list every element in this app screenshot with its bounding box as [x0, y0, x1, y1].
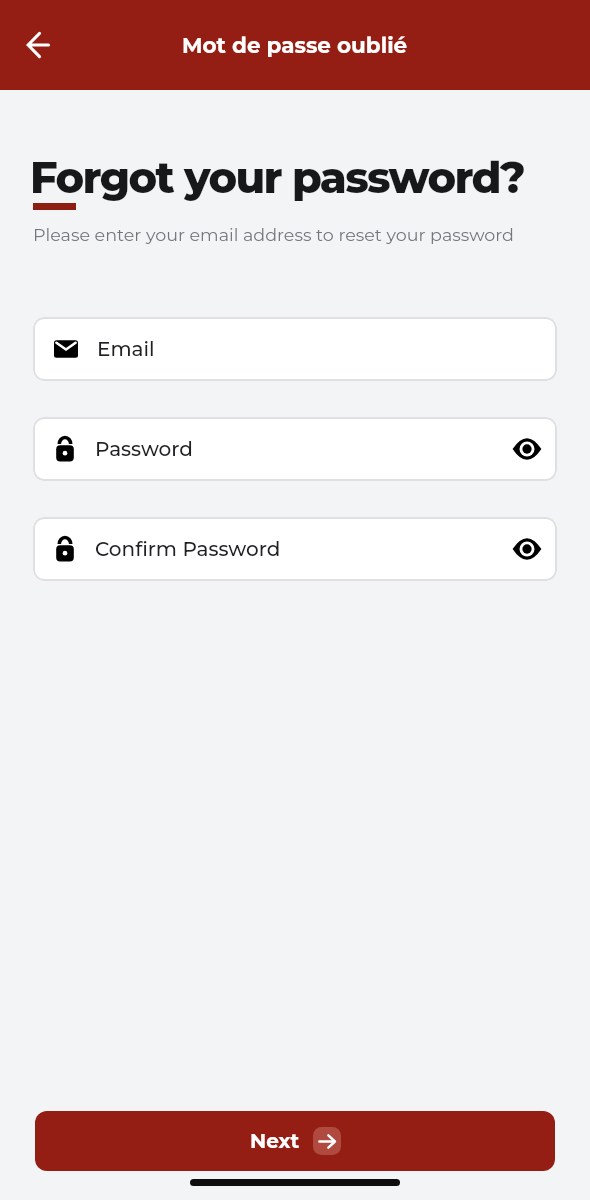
button[interactable] [16, 23, 60, 67]
staticText: Confirm Password [95, 537, 281, 561]
button[interactable]: Password [33, 417, 557, 481]
button[interactable]: Confirm Password [33, 517, 557, 581]
staticText: Email [97, 337, 155, 361]
staticText: Please enter your email address to reset… [33, 224, 514, 245]
button[interactable] [512, 534, 542, 564]
staticText: Password [95, 437, 193, 461]
button[interactable] [512, 434, 542, 464]
button[interactable]: Next [35, 1111, 555, 1171]
staticText: Mot de passe oublié [182, 32, 408, 58]
button[interactable]: Email [33, 317, 557, 381]
staticText: Next [250, 1129, 300, 1153]
staticText: Forgot your password? [30, 151, 525, 203]
